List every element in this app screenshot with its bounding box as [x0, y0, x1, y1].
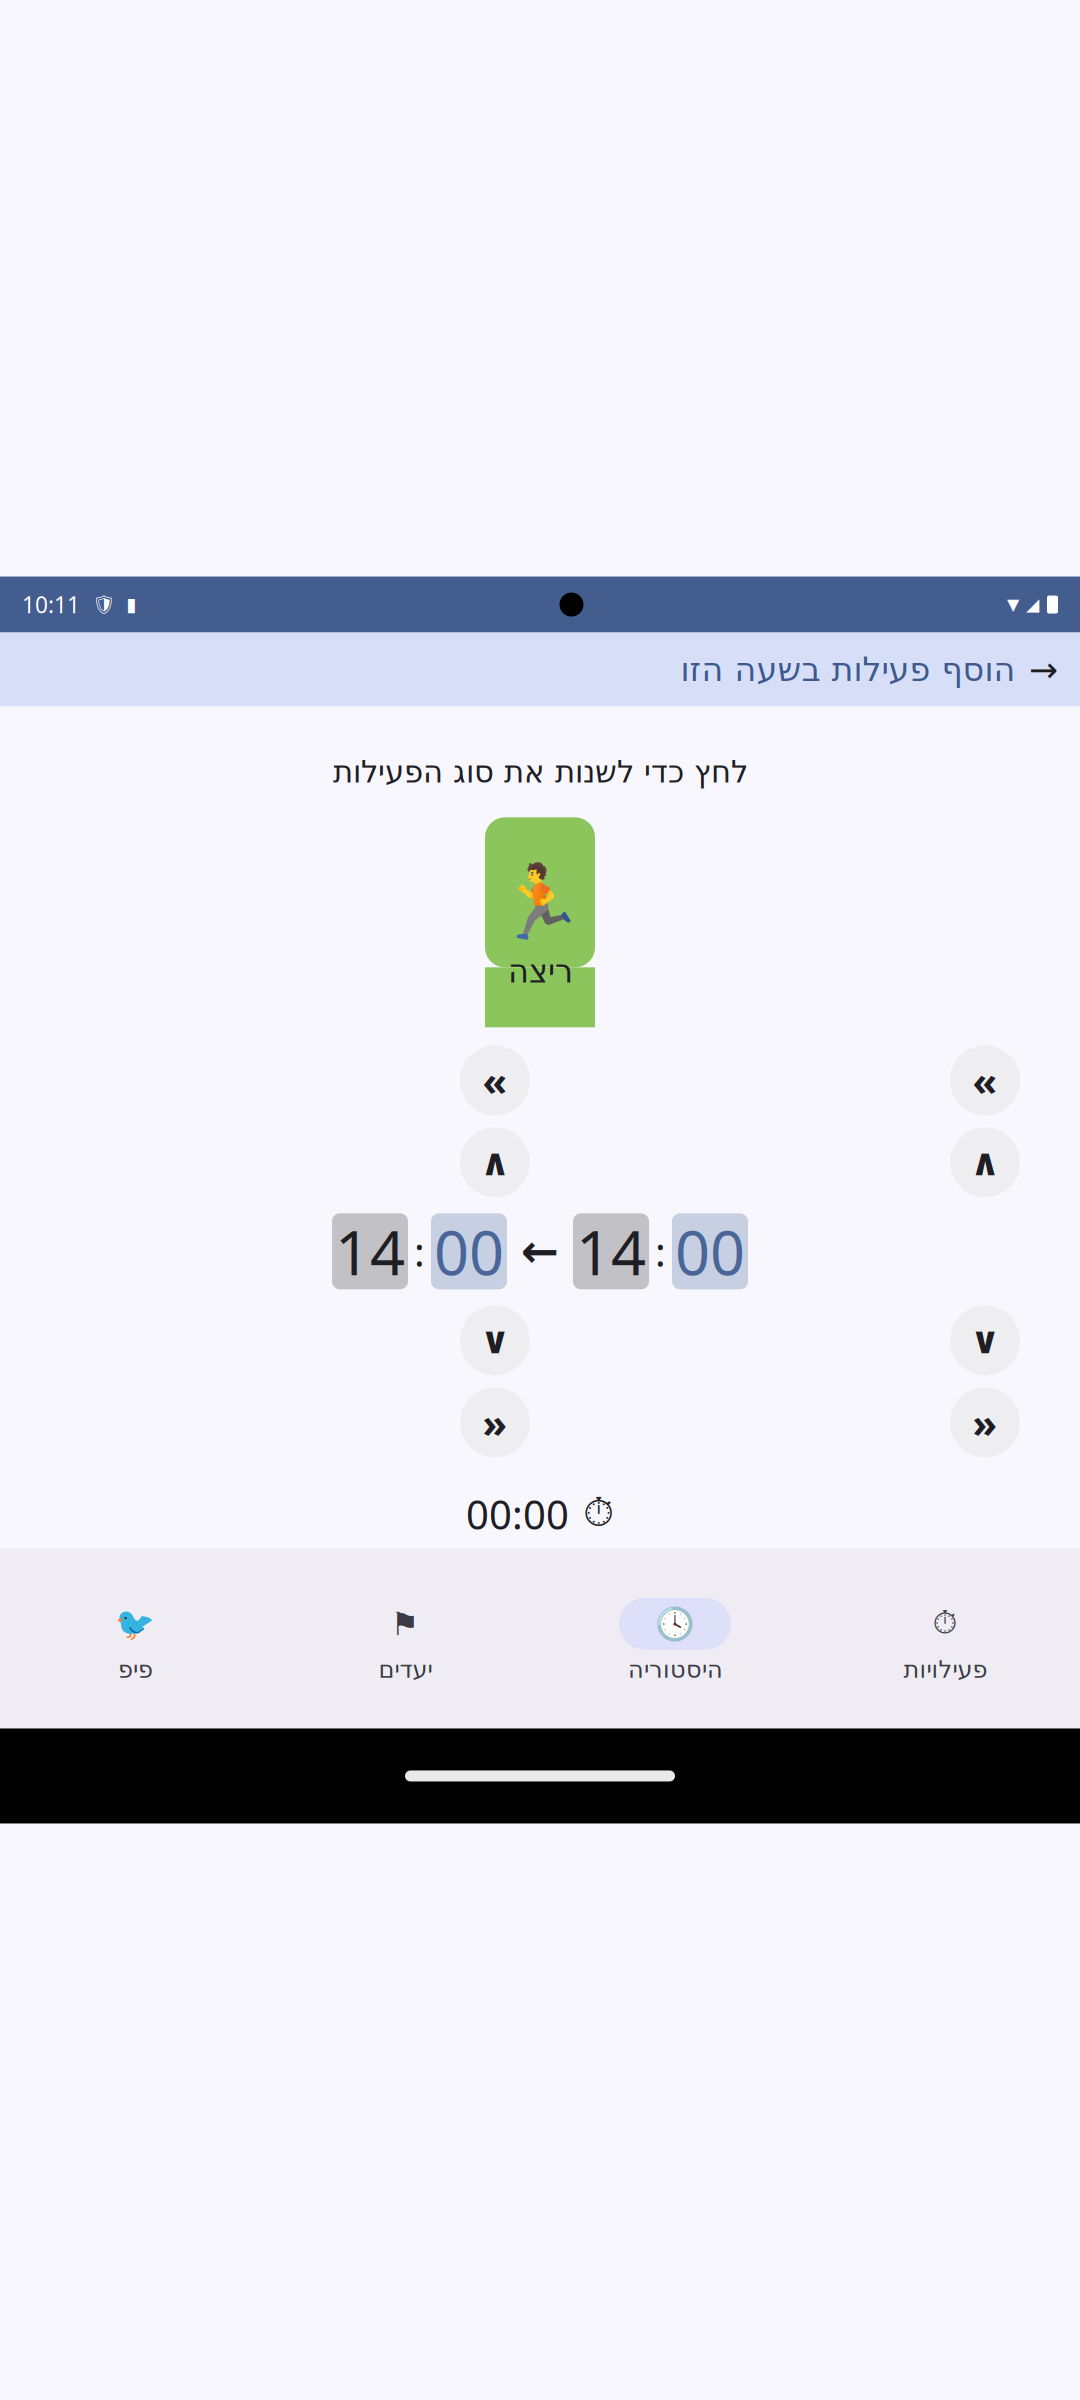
staticText: 14: [335, 1211, 405, 1292]
staticText: ⏱: [932, 1608, 957, 1639]
staticText: ⏱: [583, 1494, 614, 1533]
staticText: ◢: [1026, 595, 1039, 614]
staticText: ⚑: [390, 1606, 419, 1642]
staticText: 🏃: [495, 861, 585, 943]
staticText: פיפ: [117, 1656, 152, 1683]
button[interactable]: 14: [573, 1213, 649, 1289]
button[interactable]: Increase minutes: [950, 1127, 1020, 1197]
staticText: 10:11: [22, 589, 80, 620]
button[interactable]: Decrease hour: [460, 1305, 530, 1375]
button[interactable]: Increase hour fast: [460, 1045, 530, 1115]
button[interactable]: 00: [672, 1213, 748, 1289]
staticText: פעילויות: [903, 1656, 987, 1683]
staticText: ←: [521, 1226, 559, 1277]
staticText: »: [972, 1396, 997, 1449]
button[interactable]: ⏱: [810, 1598, 1080, 1683]
staticText: ∧: [970, 1141, 1000, 1184]
staticText: לחץ כדי לשנות את סוג הפעילות: [332, 754, 747, 789]
staticText: 14: [576, 1211, 646, 1292]
button[interactable]: 🏃: [485, 817, 595, 1027]
staticText: 🕓: [655, 1606, 695, 1642]
staticText: ∧: [480, 1141, 510, 1184]
staticText: היסטוריה: [627, 1656, 722, 1683]
staticText: ∨: [970, 1319, 1000, 1362]
staticText: ריצה: [507, 953, 572, 990]
staticText: :: [655, 1225, 666, 1278]
staticText: 00:00: [466, 1487, 569, 1540]
button[interactable]: 🕓: [540, 1598, 810, 1683]
staticText: «: [482, 1054, 507, 1107]
staticText: הוסף פעילות בשעה הזו: [680, 651, 1015, 688]
staticText: 00: [434, 1211, 504, 1292]
staticText: 🛡: [92, 594, 116, 615]
staticText: ▮: [126, 594, 136, 615]
staticText: 00: [675, 1211, 745, 1292]
staticText: :: [414, 1225, 425, 1278]
button[interactable]: Decrease minutes: [950, 1305, 1020, 1375]
button[interactable]: ⚑: [270, 1598, 540, 1683]
button[interactable]: 14: [332, 1213, 408, 1289]
staticText: →: [1029, 650, 1058, 689]
button[interactable]: Decrease hour fast: [460, 1387, 530, 1457]
staticText: יעדים: [378, 1656, 432, 1683]
staticText: ▼: [1007, 595, 1019, 614]
button[interactable]: 00: [431, 1213, 507, 1289]
staticText: «: [972, 1054, 997, 1107]
button[interactable]: Decrease minutes fast: [950, 1387, 1020, 1457]
button[interactable]: 🐦: [0, 1598, 270, 1683]
button[interactable]: Increase hour: [460, 1127, 530, 1197]
staticText: ∨: [480, 1319, 510, 1362]
button[interactable]: הוסף פעילות בשעה הזו: [0, 632, 1080, 706]
button[interactable]: Increase minutes fast: [950, 1045, 1020, 1115]
staticText: »: [482, 1396, 507, 1449]
staticText: 🐦: [115, 1606, 155, 1642]
